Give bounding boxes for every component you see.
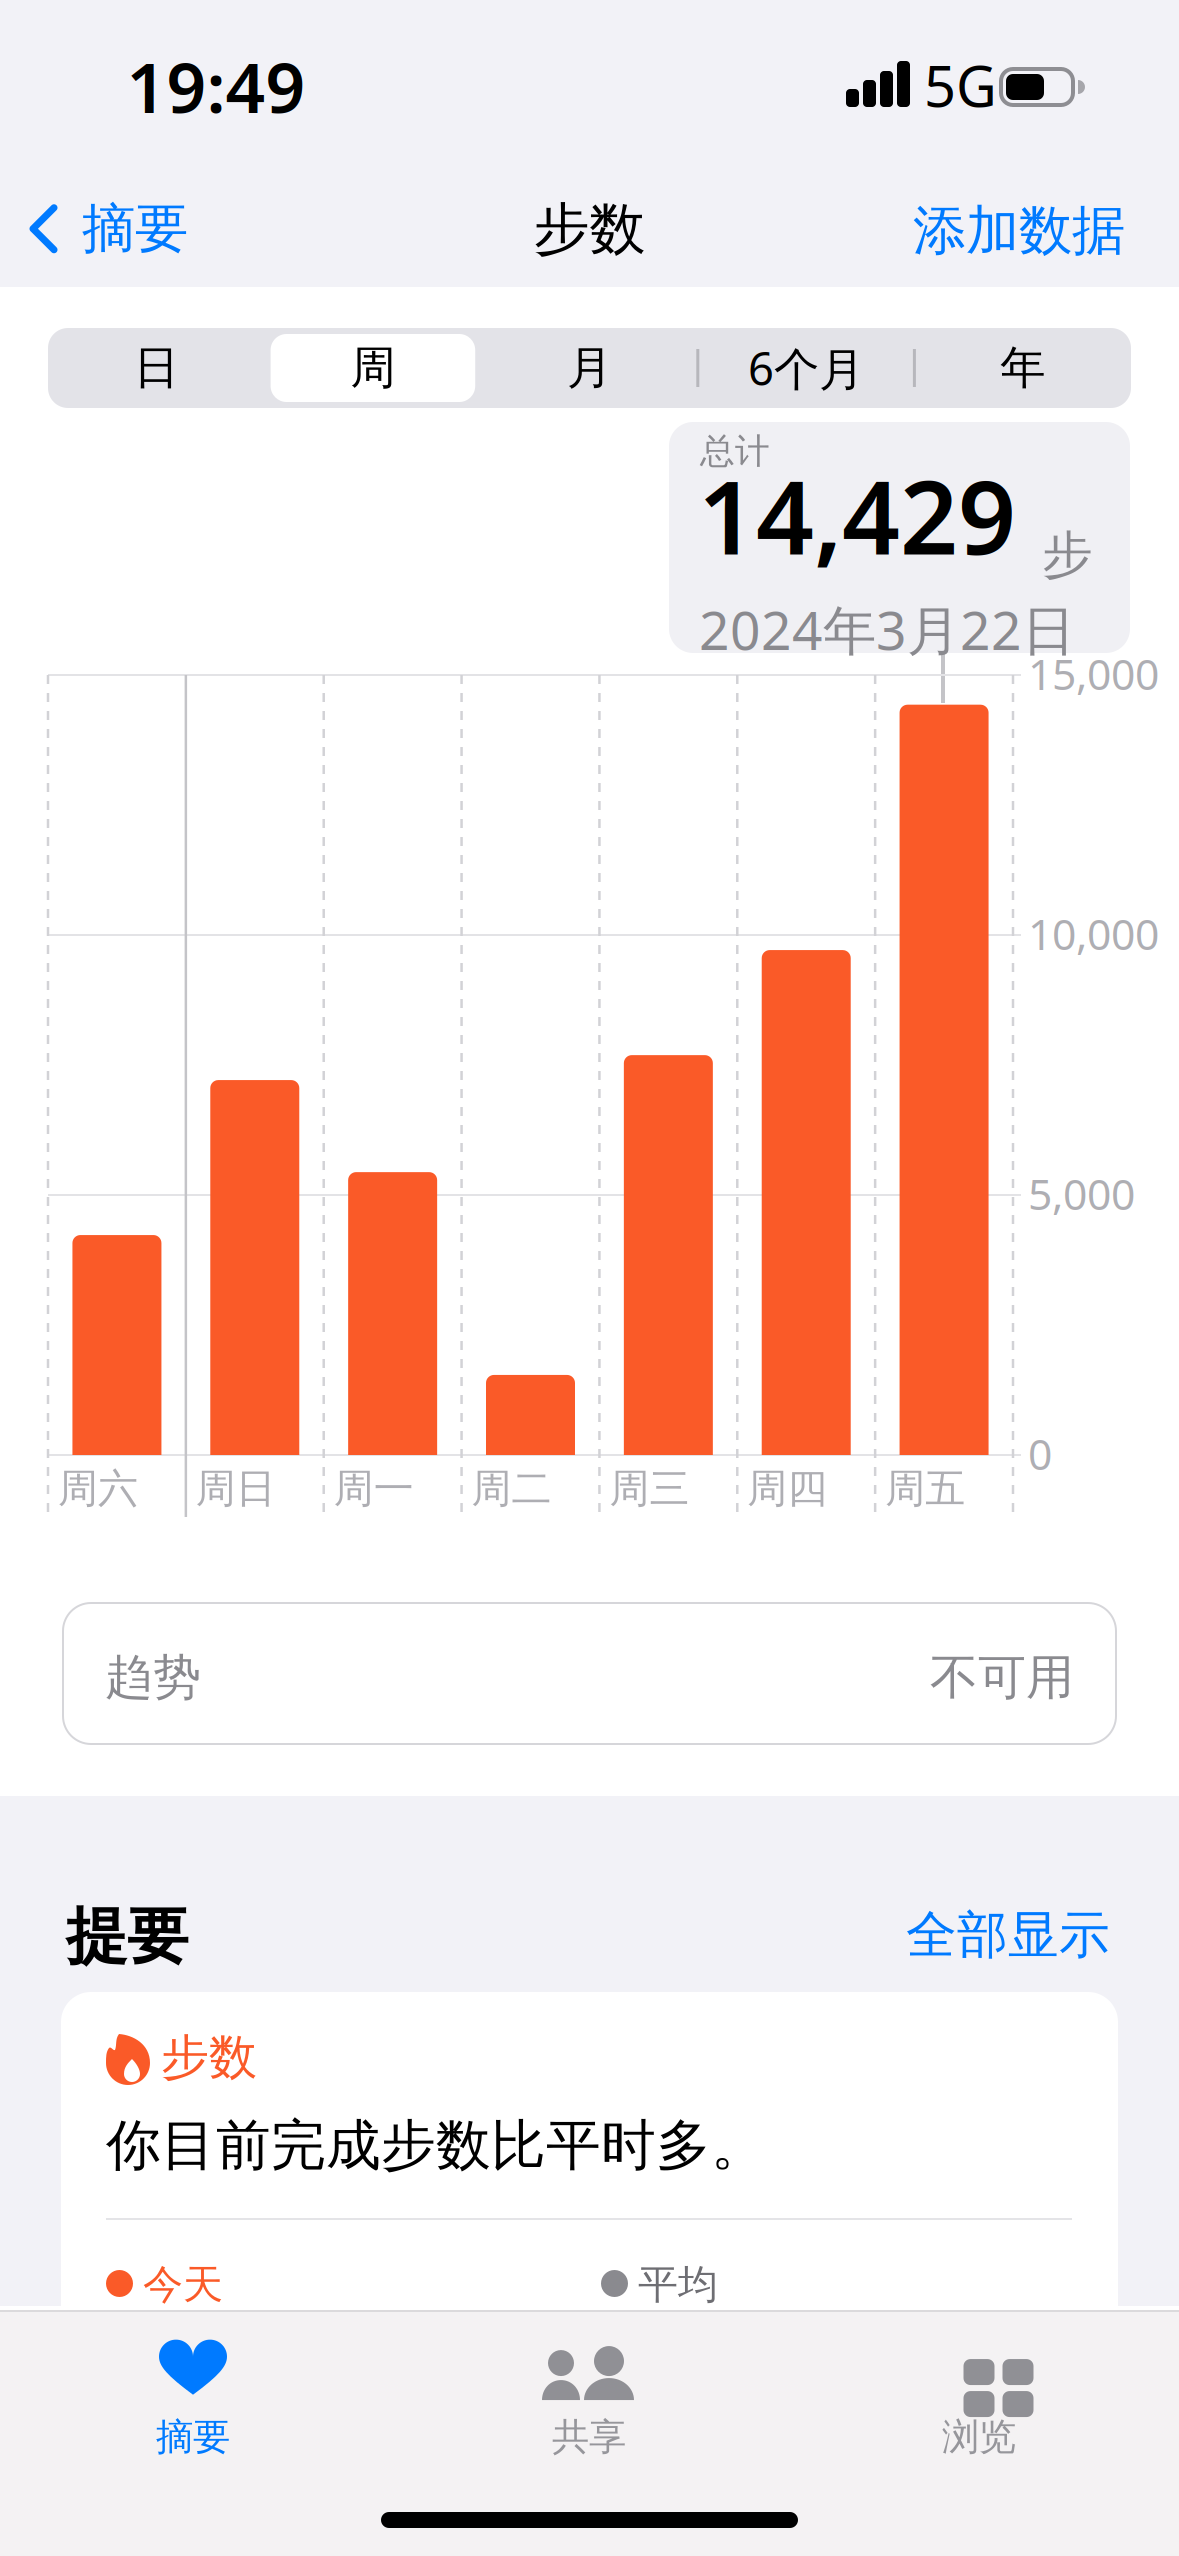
staticText: 你目前完成步数比平时多。 (106, 2112, 766, 2179)
button[interactable]: 年 (914, 328, 1131, 408)
staticText: 2024年3月22日 (699, 594, 1075, 665)
staticText: 周日 (196, 1464, 276, 1513)
staticText: 浏览 (942, 2414, 1016, 2460)
button[interactable]: 步数 (61, 1992, 1118, 2472)
staticText: 月 (567, 340, 612, 396)
staticText: 总计 (700, 430, 770, 473)
staticText: 今天 (143, 2260, 223, 2309)
button[interactable]: 月 (481, 328, 698, 408)
staticText: 0 (1028, 1425, 1052, 1482)
button[interactable]: 浏览 (819, 2336, 1139, 2466)
staticText: 趋势 (105, 1648, 201, 1707)
staticText: 平均 (638, 2260, 718, 2309)
staticText: 摘要 (156, 2414, 230, 2460)
staticText: 6个月 (748, 338, 864, 398)
button[interactable]: 返回 摘要 (30, 196, 188, 261)
button[interactable]: 日 (48, 328, 265, 408)
staticText: 5,000 (1028, 1165, 1135, 1222)
staticText: 不可用 (930, 1648, 1074, 1707)
staticText: 添加数据 (913, 198, 1125, 263)
button[interactable]: 周 (265, 328, 481, 408)
staticText: 5G (924, 48, 997, 122)
staticText: 周五 (885, 1464, 965, 1513)
staticText: 周一 (334, 1464, 414, 1513)
staticText: 日 (134, 340, 179, 396)
staticText: 步数 (161, 2028, 257, 2087)
staticText: 步 (1042, 524, 1093, 586)
staticText: 15,000 (1028, 645, 1159, 702)
staticText: 全部显示 (906, 1904, 1110, 1966)
button[interactable]: 添加数据 (913, 198, 1125, 263)
staticText: 步数 (533, 195, 645, 264)
staticText: 年 (1000, 340, 1045, 396)
staticText: 14,429 (698, 448, 1016, 583)
staticText: 周四 (747, 1464, 827, 1513)
staticText: 提要 (66, 1899, 188, 1974)
staticText: 周 (350, 340, 395, 396)
button[interactable]: 摘要 (33, 2336, 353, 2466)
staticText: 10,000 (1028, 905, 1159, 962)
button[interactable]: 6个月 (698, 328, 914, 408)
staticText: 周六 (58, 1464, 138, 1513)
staticText: 摘要 (82, 196, 188, 261)
staticText: 共享 (552, 2414, 626, 2460)
staticText: 19:49 (126, 40, 305, 132)
staticText: 周三 (609, 1464, 689, 1513)
button[interactable]: 全部显示 (906, 1904, 1110, 1966)
staticText: 周二 (472, 1464, 552, 1513)
button[interactable]: 共享 (429, 2336, 749, 2466)
